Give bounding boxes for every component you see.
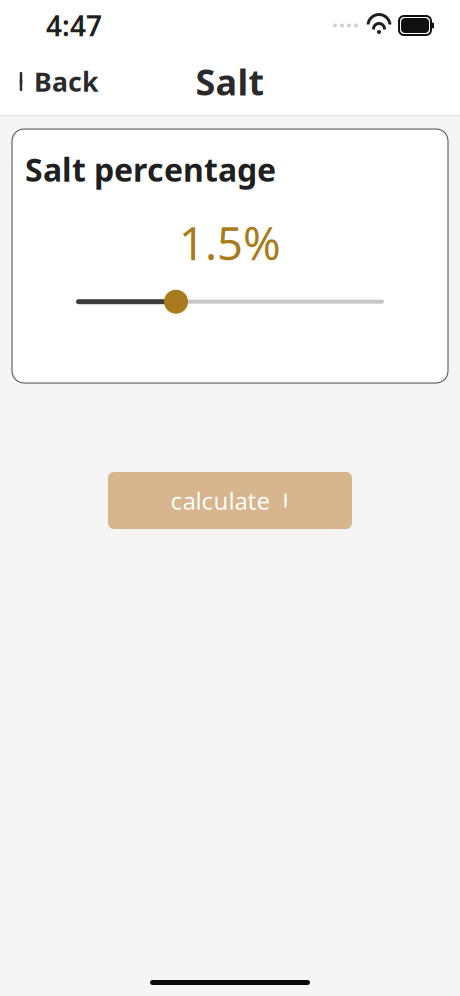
staticText: Salt [195, 58, 264, 105]
button[interactable]: Back [6, 56, 109, 107]
staticText: Back [34, 64, 99, 99]
staticText: Salt percentage [25, 148, 276, 190]
staticText: 4:47 [46, 7, 102, 44]
button[interactable]: calculate [108, 472, 352, 529]
staticText: calculate [170, 485, 270, 516]
staticText: 1.5% [179, 212, 281, 273]
